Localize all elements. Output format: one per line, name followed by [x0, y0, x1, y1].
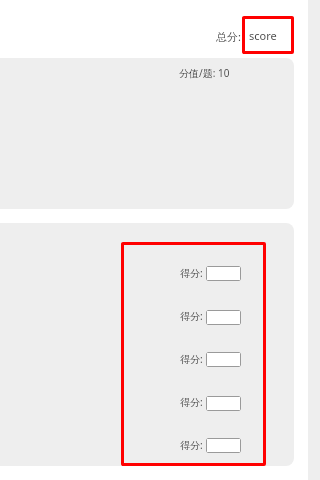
staticText: 得分: [180, 352, 203, 366]
staticText: score [249, 28, 277, 43]
button[interactable]: 得分 input 2 [206, 310, 241, 325]
button[interactable]: 得分 input 1 [206, 266, 241, 281]
staticText: 得分: [180, 438, 203, 452]
staticText: 总分: [216, 29, 241, 44]
staticText: 分值/题: 10 [179, 66, 230, 80]
button[interactable]: 得分 input 4 [206, 396, 241, 411]
staticText: 得分: [180, 395, 203, 409]
button[interactable]: 分值/题: 10 [0, 58, 294, 209]
button[interactable]: 得分 input 3 [206, 352, 241, 367]
button[interactable]: 得分 input 5 [206, 438, 241, 453]
staticText: 得分: [180, 266, 203, 280]
button[interactable]: score [242, 16, 294, 54]
staticText: 得分: [180, 309, 203, 323]
